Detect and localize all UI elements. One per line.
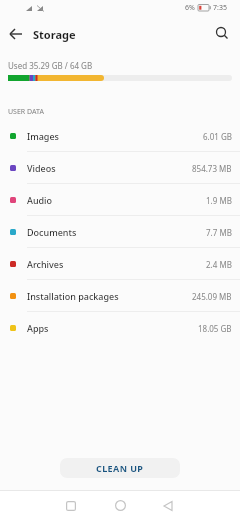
button[interactable] [204,16,240,52]
button[interactable]: Installation packages [0,280,240,312]
staticText: 18.05 GB [198,323,232,334]
staticText: CLEAN UP [96,462,144,474]
staticText: Videos [27,162,56,174]
staticText: 854.73 MB [192,163,232,174]
staticText: Archives [27,258,64,270]
staticText: Installation packages [27,290,119,302]
staticText: 7.7 MB [206,227,232,238]
button[interactable]: Documents [0,216,240,248]
staticText: Used 35.29 GB / 64 GB [8,60,93,71]
staticText: 6% [185,3,195,13]
staticText: Storage [33,27,76,42]
button[interactable]: Videos [0,152,240,184]
button[interactable] [98,491,142,520]
staticText: Images [27,130,59,142]
staticText: 2.4 MB [206,259,232,270]
button[interactable]: Apps [0,312,240,344]
staticText: Apps [27,322,49,334]
button[interactable]: Archives [0,248,240,280]
button[interactable] [49,491,92,520]
staticText: Documents [27,226,77,238]
staticText: 7:35 [213,3,227,13]
button[interactable] [0,16,32,52]
staticText: Audio [27,194,53,206]
button[interactable]: CLEAN UP [60,458,180,478]
button[interactable] [146,491,190,520]
button[interactable]: Images [0,120,240,152]
staticText: 6.01 GB [203,131,232,142]
staticText: 245.09 MB [192,291,232,302]
staticText: 1.9 MB [206,195,232,206]
button[interactable]: Audio [0,184,240,216]
staticText: USER DATA [8,107,44,117]
